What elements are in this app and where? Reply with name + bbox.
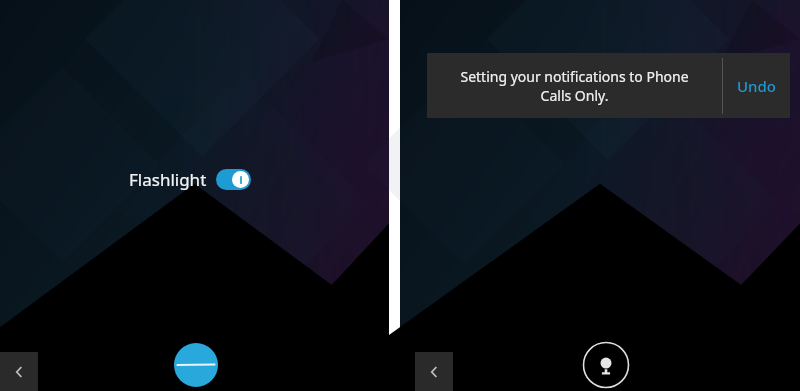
button[interactable]: Undo [723,53,790,118]
staticText: Undo [737,76,776,96]
button[interactable]: Flashlight [129,168,251,191]
button[interactable]: Back [0,352,38,391]
staticText: Setting your notifications to Phone Call… [445,67,704,105]
button[interactable]: Back [415,352,453,391]
button[interactable]: Voice search [582,341,630,389]
button[interactable]: Assistant [174,343,218,387]
staticText: Flashlight [129,168,207,191]
